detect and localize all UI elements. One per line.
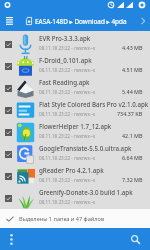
staticText: 6.64 MB (122, 154, 143, 161)
button[interactable]: Select (0, 185, 150, 207)
button[interactable]: Select (0, 141, 150, 163)
button[interactable]: Select (5, 107, 12, 114)
button[interactable]: Select (0, 53, 150, 75)
staticText: 08.11.18 23:22 - rwxrwx--x (39, 89, 96, 95)
button[interactable]: Select (0, 31, 150, 53)
staticText: 08.11.18 23:22 - rwxrwx--x (39, 45, 96, 51)
button[interactable]: Select (5, 151, 12, 158)
staticText: 08.11.18 23:22 - rwxrwx--x (39, 199, 96, 205)
button[interactable]: Go up (135, 11, 150, 31)
staticText: EASA-148D ▸ Download ▸ 4pda (35, 17, 135, 26)
button[interactable]: Select (0, 97, 150, 119)
staticText: gReader Pro 4.2.1.apk (39, 166, 104, 174)
staticText: 4.43 MB (122, 44, 143, 51)
staticText: Flat Style Colored Bars Pro v2.1.0.apk (39, 100, 149, 108)
button[interactable]: Menu (0, 11, 19, 31)
button[interactable]: Select (0, 163, 150, 185)
button[interactable]: Select (5, 173, 12, 180)
button[interactable]: Select (5, 85, 12, 92)
staticText: 4.51 MB (122, 66, 143, 73)
staticText: F-Droid_0.101.apk (39, 56, 92, 64)
staticText: 734.37 KB (117, 110, 143, 117)
staticText: 08.11.18 23:22 - rwxrwx--x (39, 177, 96, 183)
staticText: 08.11.18 23:22 - rwxrwx--x (39, 133, 96, 139)
button[interactable]: Select (5, 63, 12, 70)
button[interactable]: More options (0, 228, 22, 250)
staticText: 5.44 MB (122, 88, 143, 95)
staticText: 7.32 MB (122, 176, 143, 183)
staticText: 08.11.18 23:22 - rwxrwx--x (39, 67, 96, 73)
staticText: Fast Reading.apk (39, 78, 90, 86)
staticText: GoogleTranslate-5.5.0.ultra.apk (39, 144, 132, 152)
button[interactable]: Select (0, 75, 150, 97)
staticText: 08.11.18 23:22 - rwxrwx--x (39, 111, 96, 117)
button[interactable]: Select (5, 129, 12, 136)
button[interactable]: Select (5, 41, 12, 48)
staticText: FlowerHelper 1.7_12.apk (39, 122, 112, 130)
button[interactable]: Select (0, 119, 150, 141)
staticText: Выделены 1 папка и 47 файлов (19, 215, 105, 223)
staticText: EVR Pro-3.3.3.apk (39, 34, 91, 42)
button[interactable]: Search (123, 228, 147, 250)
staticText: Greenify-Donate-3.0 build 1.apk (39, 188, 133, 196)
button[interactable]: Select (5, 195, 12, 202)
staticText: 08.11.18 23:22 - rwxrwx--x (39, 155, 96, 161)
staticText: 42.1 MB (122, 132, 143, 139)
